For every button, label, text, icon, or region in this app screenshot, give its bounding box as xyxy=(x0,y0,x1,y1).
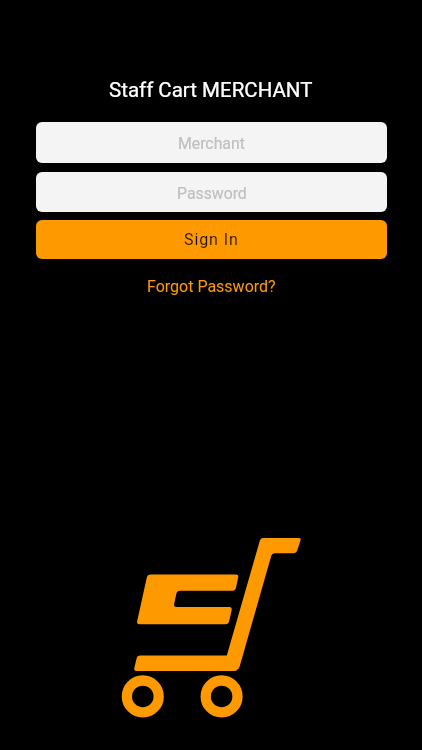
staticText: Staff Cart MERCHANT xyxy=(109,78,313,102)
button[interactable]: Sign In xyxy=(36,220,387,259)
button[interactable]: Password xyxy=(36,172,387,212)
staticText: Forgot Password? xyxy=(147,277,276,296)
other: Staff Cart logo xyxy=(130,534,306,718)
staticText: Sign In xyxy=(184,230,239,249)
button[interactable]: Merchant xyxy=(36,122,387,163)
staticText: Merchant xyxy=(178,134,245,153)
staticText: Password xyxy=(177,184,247,203)
button[interactable]: Forgot Password? xyxy=(139,273,284,300)
